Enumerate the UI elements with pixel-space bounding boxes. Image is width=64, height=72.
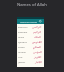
button[interactable]: Quddus <box>17 39 44 44</box>
staticText: السلام <box>33 45 42 48</box>
staticText: العزيز <box>34 55 42 58</box>
button[interactable]: Mumin <box>17 49 44 54</box>
staticText: Aziz <box>18 55 34 58</box>
button[interactable]: Malik <box>17 34 44 39</box>
staticText: القدوس <box>32 40 42 43</box>
staticText: Mumin <box>18 50 33 53</box>
button[interactable]: Search <box>39 20 42 23</box>
button[interactable]: Rahman <box>17 24 44 29</box>
staticText: Salam <box>18 45 33 48</box>
staticText: Malik <box>18 35 34 38</box>
staticText: Asma ul Husna <box>20 20 37 23</box>
staticText: الرحيم <box>33 30 42 33</box>
button[interactable]: Aziz <box>17 54 44 59</box>
staticText: الجبار <box>35 60 42 63</box>
staticText: Quddus <box>18 40 32 43</box>
staticText: المؤمن <box>33 50 42 53</box>
button[interactable]: Salam <box>17 44 44 49</box>
staticText: Jabbar <box>18 60 35 63</box>
staticText: Names of Allah <box>17 2 47 8</box>
staticText: Rahman <box>18 25 32 28</box>
staticText: Raheem <box>18 30 33 33</box>
button[interactable]: Jabbar <box>17 59 44 64</box>
staticText: الرحمن <box>32 25 42 28</box>
staticText: الملك <box>34 35 42 38</box>
button[interactable]: Raheem <box>17 29 44 34</box>
